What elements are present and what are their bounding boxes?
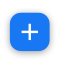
button[interactable]: Add xyxy=(10,13,50,51)
